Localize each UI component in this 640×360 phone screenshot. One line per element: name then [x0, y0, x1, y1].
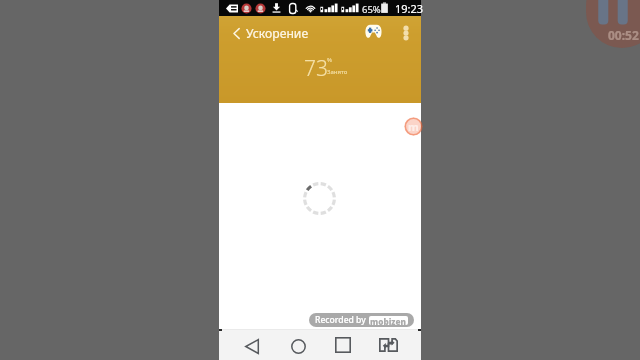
staticText: Recorded by: [315, 314, 369, 326]
staticText: %: [327, 56, 332, 64]
staticText: Занято: [327, 68, 348, 76]
staticText: mobizen: [370, 316, 407, 325]
button[interactable]: Back: [225, 20, 247, 46]
button[interactable]: Home: [283, 332, 313, 360]
staticText: 73: [304, 54, 328, 83]
staticText: 19:23: [395, 1, 424, 16]
button[interactable]: Mobizen: [404, 117, 423, 136]
button[interactable]: More options: [397, 20, 415, 46]
staticText: m: [408, 119, 419, 134]
button[interactable]: Recording timer: [586, 0, 640, 48]
button[interactable]: Game booster: [361, 18, 385, 44]
button[interactable]: Ускорение: [246, 20, 309, 46]
button[interactable]: Recent apps: [328, 331, 358, 359]
button[interactable]: Back: [237, 332, 267, 360]
staticText: 65%: [362, 3, 381, 16]
staticText: Ускорение: [246, 25, 309, 42]
button[interactable]: Multi window: [373, 331, 403, 359]
staticText: 00:52: [608, 27, 639, 43]
